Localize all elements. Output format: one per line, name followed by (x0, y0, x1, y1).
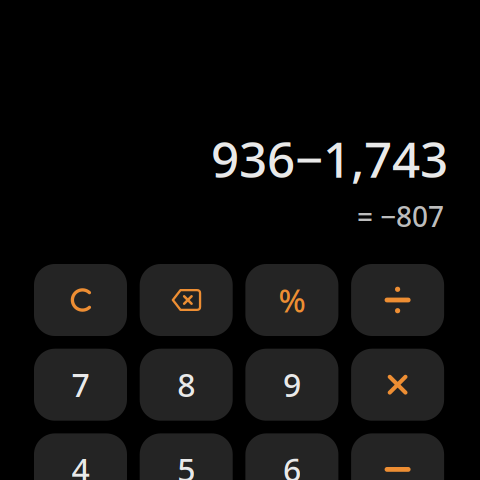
staticText: 9 (283, 363, 301, 406)
button[interactable]: 5 (140, 433, 233, 480)
button[interactable]: 6 (245, 433, 338, 480)
button[interactable]: Multiply (351, 349, 444, 421)
staticText: 8 (177, 363, 195, 406)
button[interactable]: Minus (351, 433, 444, 480)
staticText: 7 (71, 363, 89, 406)
button[interactable]: Delete (140, 264, 233, 336)
staticText: = −807 (357, 197, 444, 235)
staticText: 936−1,743 (211, 125, 448, 192)
button[interactable]: 4 (34, 433, 127, 480)
button[interactable]: 9 (245, 349, 338, 421)
staticText: % (278, 278, 305, 322)
button[interactable]: Clear (34, 264, 127, 336)
button[interactable]: 8 (140, 349, 233, 421)
staticText: 5 (177, 448, 195, 480)
staticText: 4 (71, 448, 89, 480)
button[interactable]: Divide (351, 264, 444, 336)
button[interactable]: 7 (34, 349, 127, 421)
button[interactable]: Percent (245, 264, 338, 336)
staticText: 6 (283, 448, 301, 480)
